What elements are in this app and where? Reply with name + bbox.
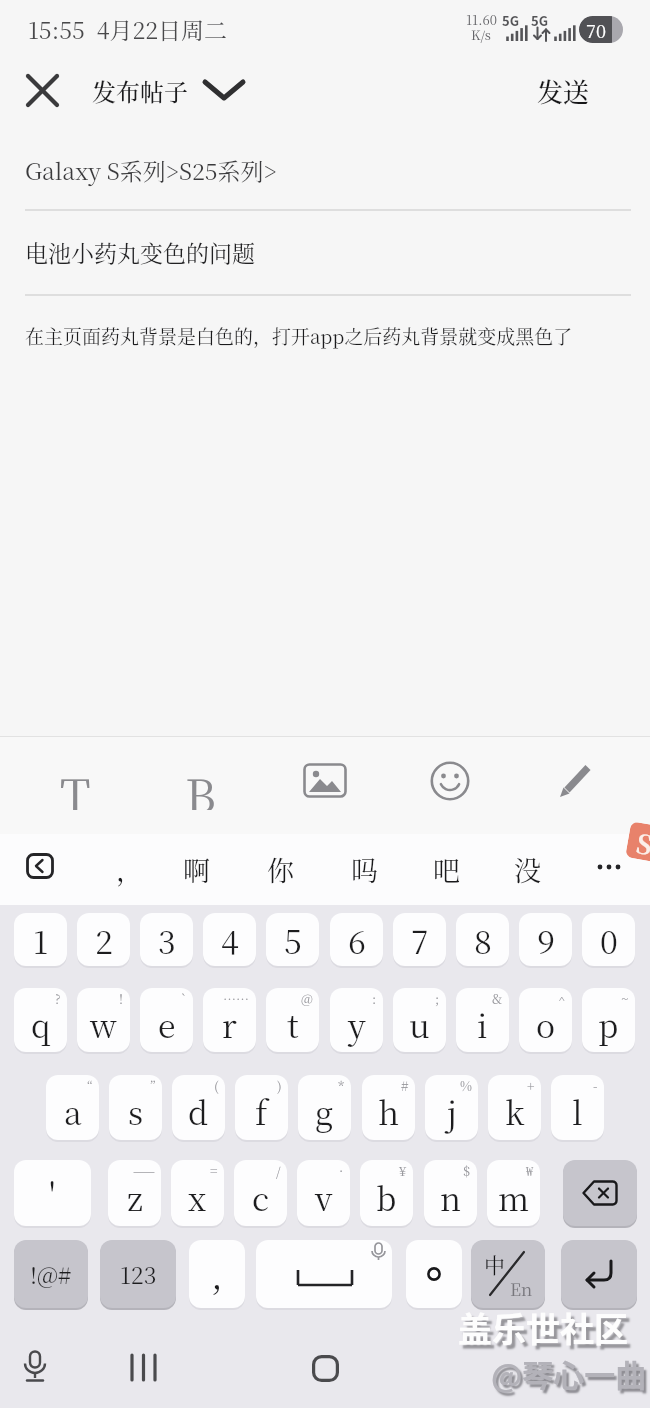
staticText: 15:55 4月22日周二 (28, 13, 228, 46)
button[interactable]: v (297, 1160, 350, 1226)
button[interactable] (596, 862, 626, 872)
button[interactable]: e (140, 988, 193, 1052)
staticText: d (188, 1088, 209, 1134)
button[interactable] (26, 74, 59, 107)
button[interactable] (406, 1240, 462, 1308)
button[interactable] (563, 1160, 637, 1226)
button[interactable]: x (171, 1160, 224, 1226)
button[interactable]: l (551, 1075, 604, 1140)
staticText: $ (463, 1161, 471, 1180)
button[interactable] (202, 79, 246, 101)
button[interactable]: 8 (456, 913, 509, 966)
button[interactable] (430, 761, 470, 801)
button[interactable]: j (425, 1075, 478, 1140)
staticText: w (90, 1001, 117, 1047)
staticText: “ (87, 1076, 93, 1095)
staticText: = (210, 1161, 218, 1180)
staticText: q (31, 1001, 51, 1047)
button[interactable]: o (519, 988, 572, 1052)
button[interactable]: 123 (100, 1240, 176, 1308)
button[interactable]: 7 (393, 913, 446, 966)
button[interactable]: y (330, 988, 383, 1052)
button[interactable] (303, 763, 347, 798)
button[interactable]: B (165, 760, 235, 810)
staticText: 5 (284, 917, 302, 963)
staticText: 你 (267, 850, 294, 889)
button[interactable]: 0 (582, 913, 635, 966)
staticText: s (128, 1088, 144, 1134)
button[interactable] (256, 1240, 392, 1308)
button[interactable]: 6 (330, 913, 383, 966)
staticText: B (185, 760, 216, 810)
button[interactable]: 没 (502, 838, 552, 900)
button[interactable]: z (108, 1160, 161, 1226)
button[interactable]: 9 (519, 913, 572, 966)
button[interactable]: 1 (14, 913, 67, 966)
button[interactable]: ， (104, 838, 154, 900)
staticText: ; (435, 989, 440, 1008)
button[interactable]: q (14, 988, 67, 1052)
button[interactable] (557, 762, 595, 800)
button[interactable]: 2 (77, 913, 130, 966)
staticText: 1 (33, 917, 49, 963)
button[interactable]: a (46, 1075, 99, 1140)
button[interactable]: f (235, 1075, 288, 1140)
staticText: 5G (531, 11, 548, 27)
staticText: ! (119, 989, 124, 1008)
staticText: @ (301, 989, 313, 1008)
staticText: 3 (158, 917, 176, 963)
button[interactable] (22, 1350, 48, 1384)
button[interactable]: t (266, 988, 319, 1052)
staticText: v (315, 1174, 333, 1220)
staticText: a (64, 1088, 82, 1134)
staticText: x (188, 1174, 207, 1220)
button[interactable]: 啊 (171, 838, 221, 900)
button[interactable] (561, 1240, 637, 1308)
button[interactable]: b (360, 1160, 413, 1226)
button[interactable]: T (40, 760, 110, 810)
button[interactable]: c (234, 1160, 287, 1226)
button[interactable] (26, 853, 54, 879)
button[interactable]: ' (14, 1160, 91, 1226)
button[interactable]: 吗 (339, 838, 389, 900)
button[interactable]: d (172, 1075, 225, 1140)
staticText: o (536, 1001, 556, 1047)
button[interactable]: 3 (140, 913, 193, 966)
staticText: t (287, 1001, 299, 1047)
staticText: y (348, 1001, 366, 1047)
staticText: k (505, 1088, 525, 1134)
button[interactable]: h (362, 1075, 415, 1140)
staticText: 11.60 (466, 10, 497, 28)
staticText: ” (150, 1076, 156, 1095)
button[interactable]: u (393, 988, 446, 1052)
button[interactable]: , (189, 1240, 245, 1308)
staticText: 7 (411, 917, 429, 963)
staticText: - (593, 1076, 598, 1095)
button[interactable] (312, 1355, 339, 1382)
button[interactable]: g (298, 1075, 351, 1140)
button[interactable]: !@# (14, 1240, 88, 1308)
button[interactable]: Galaxy S系列>S25系列> (25, 150, 625, 190)
staticText: l (572, 1088, 583, 1134)
button[interactable]: p (582, 988, 635, 1052)
button[interactable]: 发布帖子 (92, 68, 202, 112)
button[interactable]: m (487, 1160, 540, 1226)
staticText: 在主页面药丸背景是白色的，打开app之后药丸背景就变成黑色了 (25, 322, 573, 349)
button[interactable]: 4 (203, 913, 256, 966)
button[interactable]: s (109, 1075, 162, 1140)
staticText: 电池小药丸变色的问题 (25, 236, 255, 269)
staticText: # (401, 1076, 409, 1095)
button[interactable]: r (203, 988, 256, 1052)
button[interactable]: n (424, 1160, 477, 1226)
button[interactable]: k (488, 1075, 541, 1140)
button[interactable]: 你 (255, 838, 305, 900)
button[interactable]: 中 (471, 1240, 545, 1308)
button[interactable]: w (77, 988, 130, 1052)
button[interactable]: 5 (266, 913, 319, 966)
button[interactable]: i (456, 988, 509, 1052)
button[interactable] (130, 1355, 158, 1381)
staticText: f (255, 1088, 268, 1134)
button[interactable]: 吧 (421, 838, 471, 900)
button[interactable]: 发送 (537, 68, 617, 112)
staticText: r (222, 1001, 237, 1047)
